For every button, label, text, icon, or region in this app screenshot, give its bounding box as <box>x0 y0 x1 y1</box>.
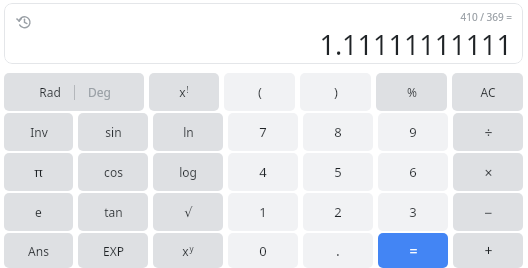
button[interactable]: x <box>149 73 219 111</box>
button[interactable]: ) <box>300 73 371 111</box>
button[interactable]: 6 <box>378 153 448 191</box>
staticText: % <box>407 84 417 100</box>
button[interactable]: Ans <box>4 233 73 268</box>
staticText: + <box>484 241 493 260</box>
staticText: √ <box>184 205 193 220</box>
button[interactable]: 0 <box>228 233 298 268</box>
button[interactable]: 3 <box>378 193 448 231</box>
button[interactable]: ÷ <box>453 113 523 151</box>
button[interactable]: Rad <box>4 73 144 111</box>
button[interactable]: x <box>153 233 223 268</box>
button[interactable]: AC <box>452 73 523 111</box>
staticText: y <box>189 243 194 254</box>
button[interactable]: sin <box>78 113 148 151</box>
staticText: 7 <box>259 123 267 141</box>
button[interactable]: 9 <box>378 113 448 151</box>
staticText: = <box>409 241 418 260</box>
staticText: log <box>179 164 197 180</box>
staticText: 4 <box>259 163 267 181</box>
button[interactable]: 4 <box>228 153 298 191</box>
staticText: tan <box>104 204 123 220</box>
button[interactable]: 2 <box>303 193 373 231</box>
staticText: Rad <box>39 84 61 100</box>
staticText: 2 <box>334 203 342 221</box>
staticText: Ans <box>28 243 49 259</box>
button[interactable]: 8 <box>303 113 373 151</box>
button[interactable]: ln <box>153 113 223 151</box>
staticText: ln <box>183 124 194 140</box>
staticText: ( <box>258 83 262 101</box>
staticText: 3 <box>409 203 417 221</box>
button[interactable]: Inv <box>4 113 73 151</box>
staticText: e <box>35 204 42 220</box>
staticText: 5 <box>334 163 342 181</box>
staticText: 410 / 369 = <box>460 10 512 24</box>
staticText: AC <box>480 84 496 100</box>
staticText: 1 <box>259 203 267 221</box>
button[interactable]: tan <box>78 193 148 231</box>
button[interactable]: = <box>378 233 448 268</box>
staticText: EXP <box>103 243 124 259</box>
button[interactable]: + <box>453 233 523 268</box>
staticText: . <box>336 241 340 260</box>
button[interactable]: 7 <box>228 113 298 151</box>
staticText: 0 <box>259 242 267 260</box>
staticText: − <box>484 203 493 222</box>
button[interactable]: % <box>376 73 447 111</box>
button[interactable]: √ <box>153 193 223 231</box>
button[interactable]: × <box>453 153 523 191</box>
button[interactable]: 1 <box>228 193 298 231</box>
button[interactable]: EXP <box>78 233 148 268</box>
staticText: 6 <box>409 163 417 181</box>
button[interactable]: ( <box>224 73 295 111</box>
button[interactable]: π <box>4 153 73 191</box>
button[interactable]: . <box>303 233 373 268</box>
staticText: sin <box>105 124 122 140</box>
staticText: x <box>179 84 186 100</box>
staticText: 8 <box>334 123 342 141</box>
button[interactable]: 5 <box>303 153 373 191</box>
button[interactable]: log <box>153 153 223 191</box>
button[interactable]: History <box>13 10 35 32</box>
button[interactable]: e <box>4 193 73 231</box>
staticText: Deg <box>88 84 111 100</box>
staticText: Inv <box>30 124 48 140</box>
staticText: ) <box>334 83 338 101</box>
staticText: cos <box>104 164 123 180</box>
staticText: π <box>34 163 43 181</box>
staticText: x <box>182 243 189 259</box>
staticText: 9 <box>409 123 417 141</box>
button[interactable]: cos <box>78 153 148 191</box>
staticText: 1.11111111111 <box>319 26 512 63</box>
staticText: ÷ <box>484 123 493 142</box>
staticText: ! <box>186 84 189 95</box>
staticText: × <box>484 163 493 182</box>
button[interactable]: − <box>453 193 523 231</box>
